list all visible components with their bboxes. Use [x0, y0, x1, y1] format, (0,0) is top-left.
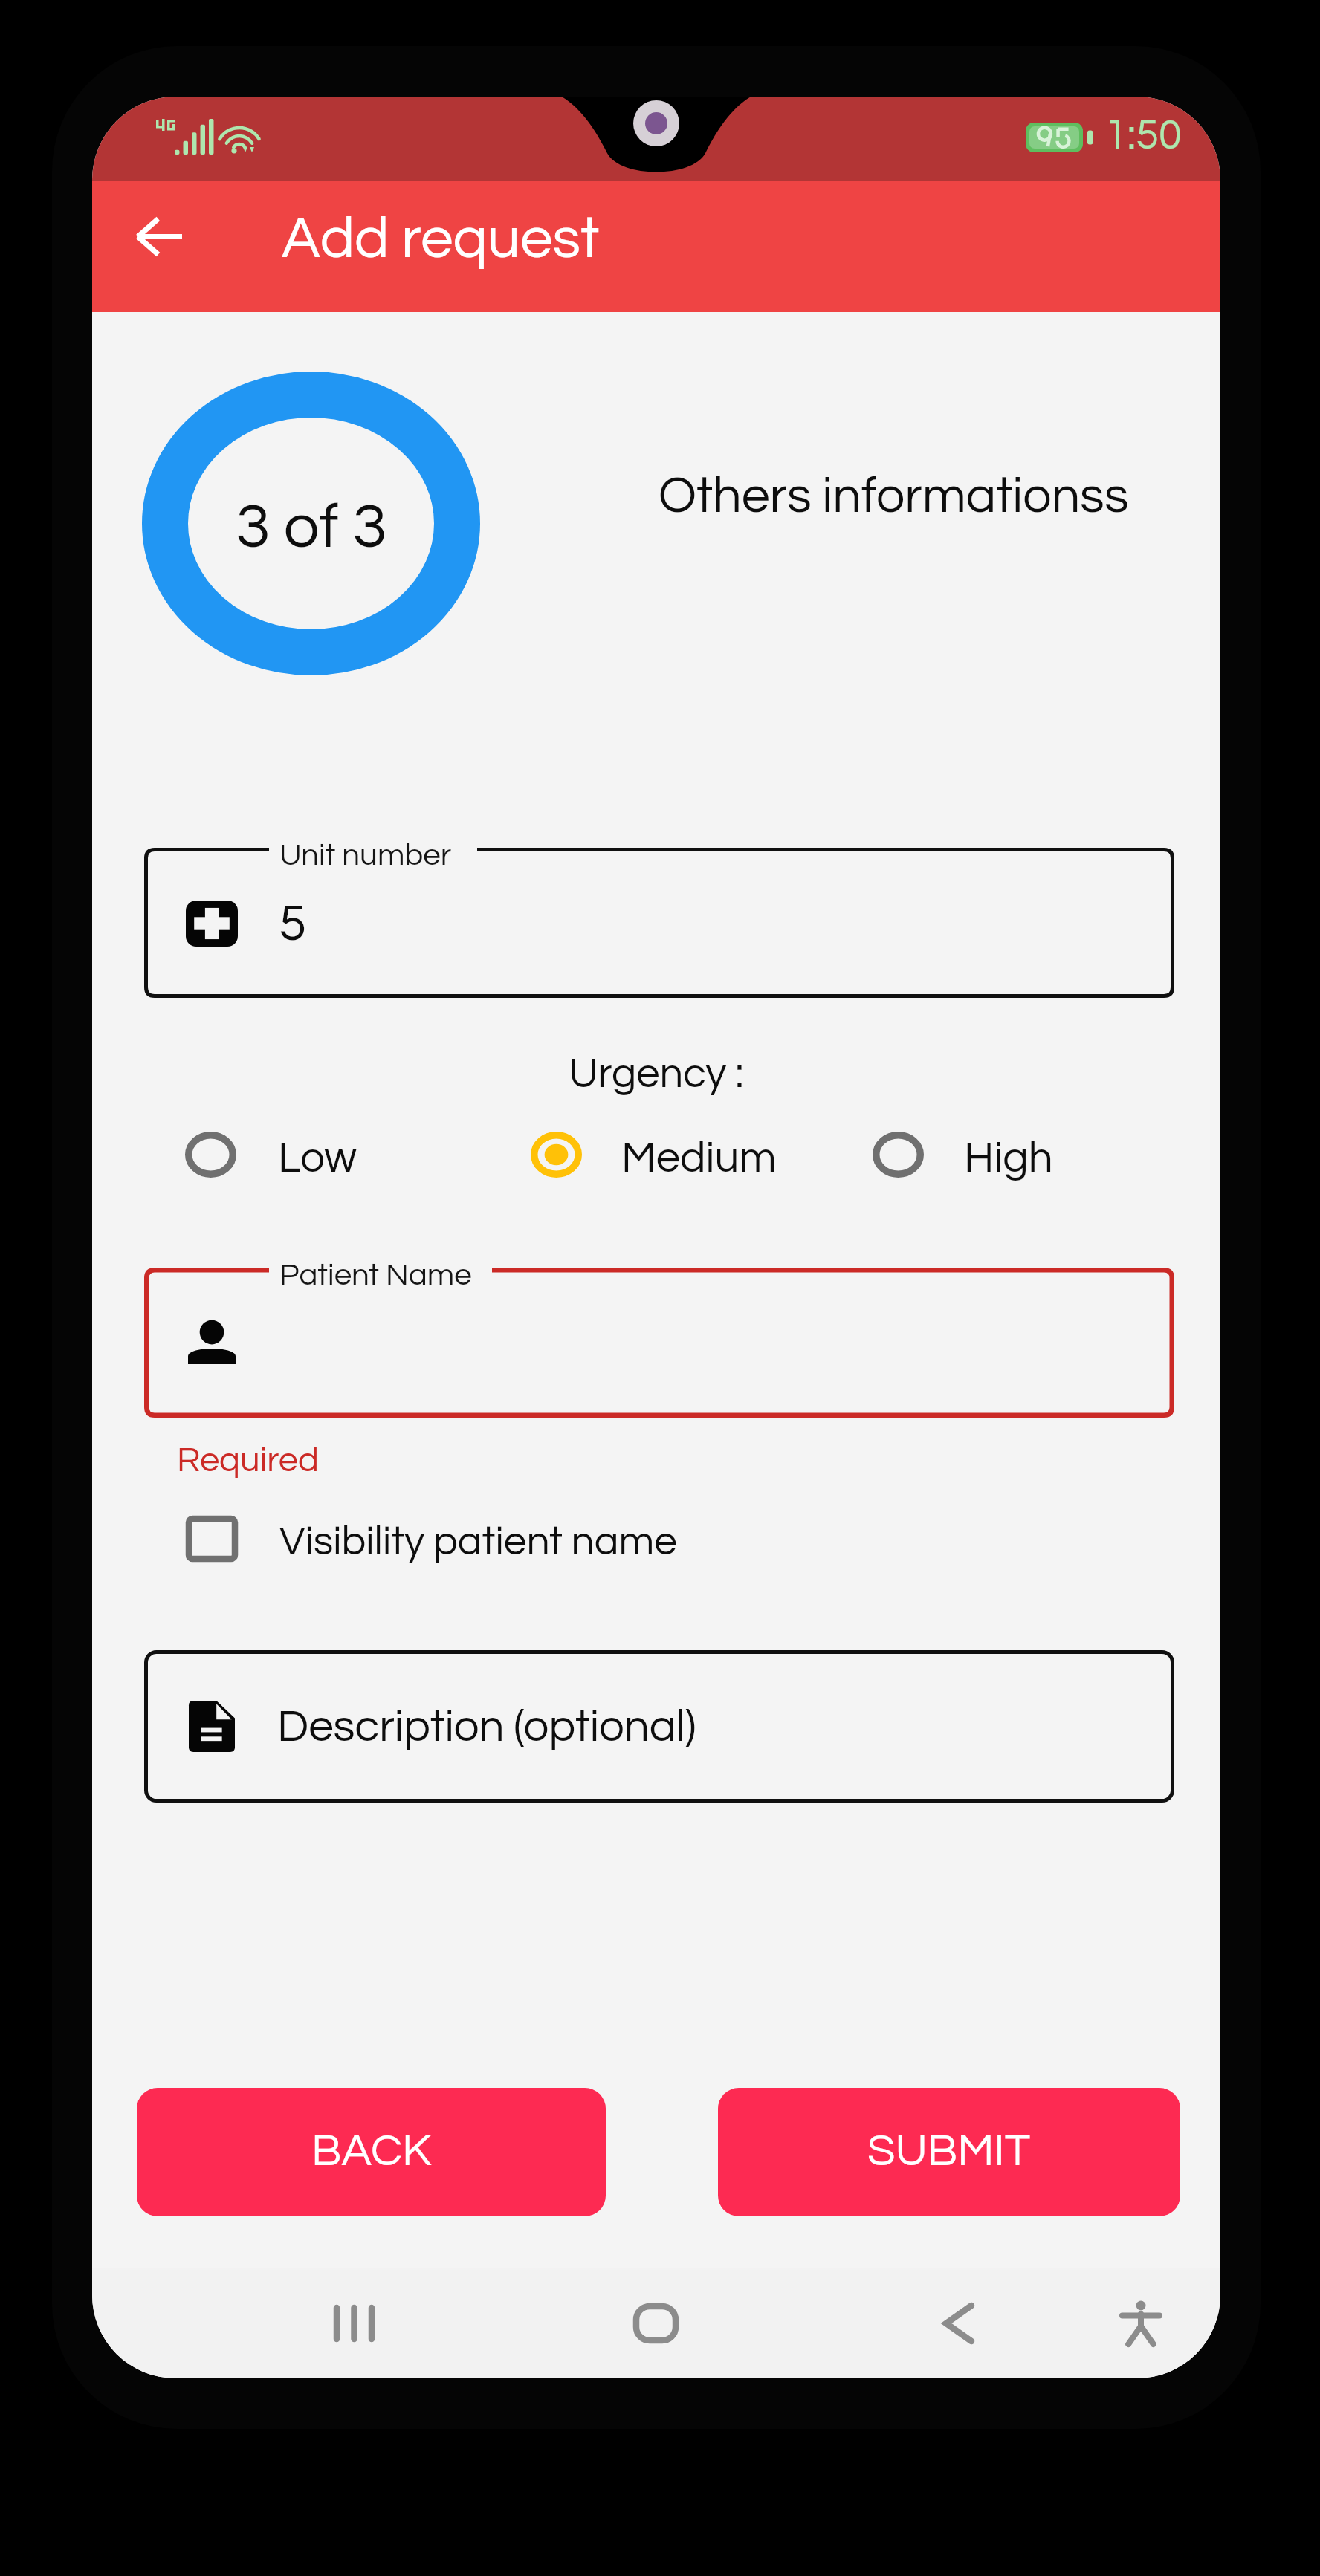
staticText: Patient Name	[279, 1259, 472, 1291]
button[interactable]: Medium	[531, 1132, 777, 1178]
staticText: Others informationss	[659, 470, 1129, 522]
button[interactable]: 5	[144, 848, 1174, 998]
staticText: Required	[177, 1442, 320, 1478]
button[interactable]: Description (optional)	[144, 1650, 1174, 1803]
button[interactable]	[144, 1268, 1174, 1418]
staticText: SUBMIT	[867, 2128, 1031, 2175]
button[interactable]: Back	[111, 192, 207, 282]
button[interactable]: SUBMIT	[718, 2088, 1180, 2216]
staticText: Urgency :	[92, 1053, 1220, 1096]
staticText: Add request	[282, 210, 600, 269]
staticText: Unit number	[279, 840, 452, 872]
staticText: BACK	[311, 2128, 432, 2175]
staticText: 5	[279, 898, 307, 950]
button[interactable]: Accessibility	[1096, 2279, 1185, 2368]
button[interactable]: Home	[611, 2279, 700, 2368]
staticText: Description (optional)	[277, 1704, 696, 1751]
button[interactable]: Low	[185, 1132, 357, 1178]
button[interactable]: Visibility patient name	[186, 1513, 677, 1565]
button[interactable]: High	[873, 1132, 1053, 1178]
button[interactable]: BACK	[137, 2088, 606, 2216]
button[interactable]: Back	[914, 2279, 1003, 2368]
staticText: High	[964, 1136, 1053, 1181]
staticText: Medium	[621, 1136, 777, 1181]
staticText: 1:50	[1104, 114, 1182, 158]
staticText: Low	[278, 1136, 357, 1181]
staticText: 3 of 3	[236, 495, 387, 560]
button[interactable]: Recents	[309, 2279, 398, 2368]
staticText: Visibility patient name	[279, 1521, 677, 1563]
